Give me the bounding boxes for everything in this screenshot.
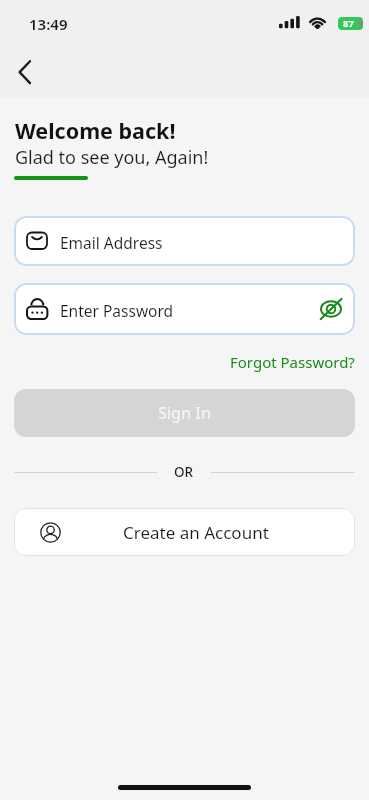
staticText: Enter Password xyxy=(60,300,174,321)
button[interactable]: Create an Account xyxy=(14,508,355,556)
staticText: Welcome back! xyxy=(15,116,176,145)
button[interactable]: Forgot Password? xyxy=(225,351,355,373)
staticText: OR xyxy=(174,463,194,481)
button[interactable]: Email Address xyxy=(14,216,355,266)
staticText: 13:49 xyxy=(29,14,68,34)
staticText: Create an Account xyxy=(123,521,269,544)
button[interactable] xyxy=(310,288,352,330)
button[interactable] xyxy=(8,54,44,90)
button[interactable]: Sign In xyxy=(14,389,355,437)
staticText: 87 xyxy=(343,17,354,30)
staticText: Forgot Password? xyxy=(230,352,355,372)
staticText: Email Address xyxy=(60,232,163,253)
staticText: Sign In xyxy=(158,402,211,424)
button[interactable]: Enter Password xyxy=(14,283,355,335)
staticText: Glad to see you, Again! xyxy=(15,145,209,170)
